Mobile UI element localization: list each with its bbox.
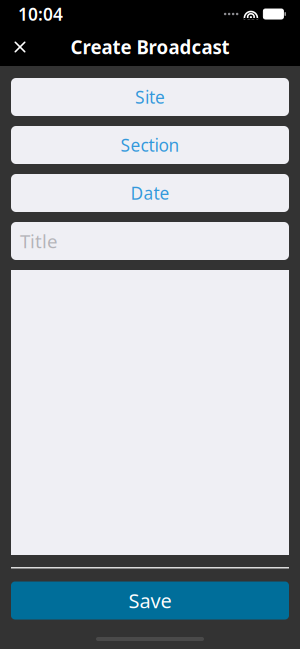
- button[interactable]: Section: [11, 126, 289, 164]
- button[interactable]: Close: [0, 28, 40, 66]
- button[interactable]: Date: [11, 174, 289, 212]
- staticText: Section: [120, 133, 179, 156]
- button[interactable]: Site: [11, 78, 289, 116]
- staticText: Title: [20, 229, 58, 253]
- staticText: Site: [135, 85, 165, 108]
- staticText: Create Broadcast: [70, 35, 229, 59]
- button[interactable]: Title: [11, 222, 289, 260]
- staticText: Date: [130, 181, 169, 204]
- button[interactable]: Save: [11, 581, 289, 619]
- staticText: Save: [128, 587, 171, 614]
- staticText: 10:04: [18, 2, 63, 25]
